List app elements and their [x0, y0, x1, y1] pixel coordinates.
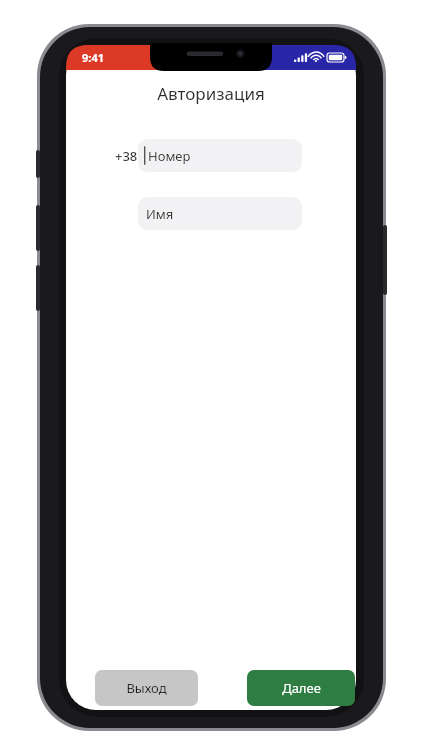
staticText: 9:41 — [82, 50, 104, 65]
button[interactable]: Выход — [95, 670, 198, 706]
button[interactable]: Имя — [138, 197, 302, 230]
staticText: Номер — [148, 147, 191, 165]
staticText: Авторизация — [157, 82, 265, 105]
button[interactable]: Номер — [138, 139, 302, 172]
staticText: +38 — [115, 147, 138, 165]
staticText: Имя — [146, 205, 174, 223]
staticText: Далее — [282, 679, 321, 697]
staticText: Выход — [126, 679, 167, 697]
button[interactable]: Далее — [247, 670, 355, 706]
